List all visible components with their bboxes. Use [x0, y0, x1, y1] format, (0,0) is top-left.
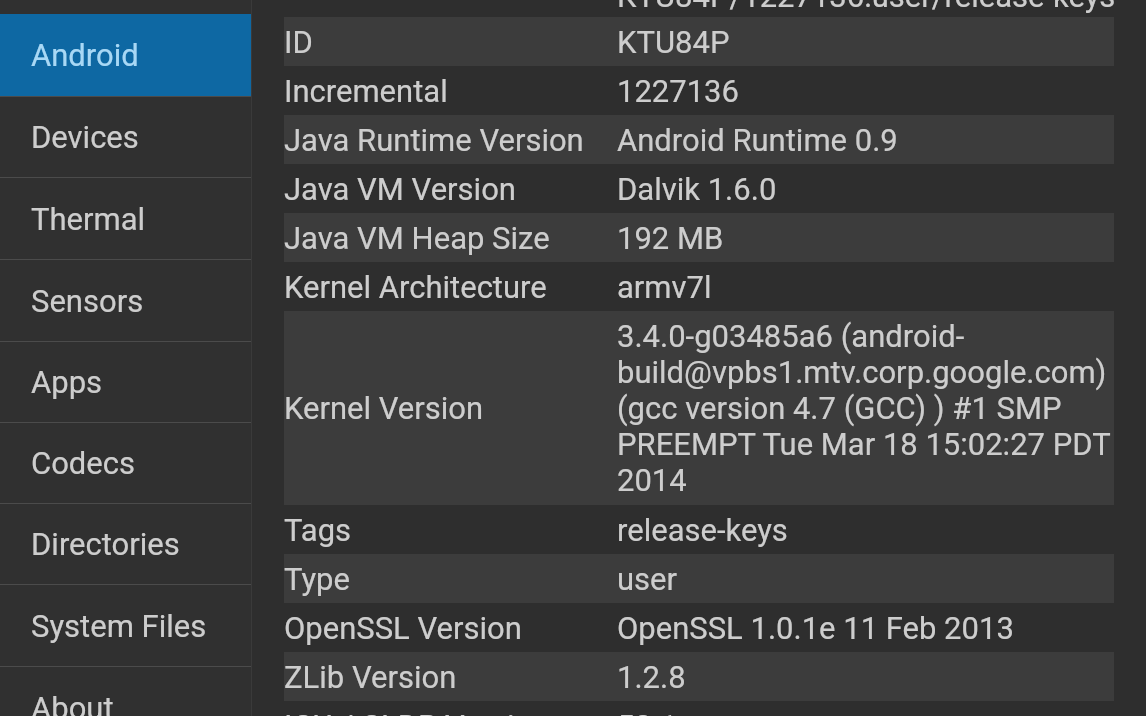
staticText: KTU84P/1227136:user/release-keys [617, 0, 1114, 14]
button[interactable]: Sensors [0, 260, 251, 341]
button[interactable]: Type [284, 554, 1114, 603]
staticText: Dalvik 1.6.0 [617, 171, 1114, 207]
staticText: Directories [31, 526, 180, 562]
staticText: 1227136 [617, 73, 1114, 109]
staticText: Java Runtime Version [284, 122, 617, 158]
button[interactable]: Android [0, 14, 251, 96]
button[interactable]: About [0, 667, 251, 716]
staticText: Type [284, 561, 617, 597]
button[interactable]: Java Runtime Version [284, 115, 1114, 164]
button[interactable]: Thermal [0, 178, 251, 259]
button[interactable]: ZLib Version [284, 652, 1114, 701]
button[interactable]: Directories [0, 504, 251, 584]
button[interactable]: Codecs [0, 423, 251, 503]
button[interactable]: Kernel Architecture [284, 262, 1114, 311]
button[interactable]: Java VM Version [284, 164, 1114, 213]
staticText: Incremental [284, 73, 617, 109]
staticText: ICU / CLDR Version [284, 708, 617, 716]
button[interactable]: KTU84P/1227136:user/release-keys [284, 0, 1114, 17]
staticText: Devices [31, 119, 139, 155]
staticText: 1.2.8 [617, 659, 1114, 695]
staticText: Android Runtime 0.9 [617, 122, 1114, 158]
button[interactable]: OpenSSL Version [284, 603, 1114, 652]
staticText: ZLib Version [284, 659, 617, 695]
staticText: ID [284, 24, 617, 60]
button[interactable]: ICU / CLDR Version [284, 701, 1114, 716]
staticText: user [617, 561, 1114, 597]
staticText: armv7l [617, 269, 1114, 305]
button[interactable]: Java VM Heap Size [284, 213, 1114, 262]
button[interactable]: Tags [284, 505, 1114, 554]
staticText: 53.1 [617, 708, 1114, 716]
button[interactable]: Devices [0, 97, 251, 177]
staticText: 192 MB [617, 220, 1114, 256]
staticText: Java VM Version [284, 171, 617, 207]
staticText: About [31, 690, 114, 716]
staticText: Thermal [31, 201, 146, 237]
staticText: Codecs [31, 445, 136, 481]
button[interactable]: Apps [0, 342, 251, 422]
button[interactable]: Kernel Version [284, 311, 1114, 505]
staticText: release-keys [617, 512, 1114, 548]
staticText: Apps [31, 364, 103, 400]
staticText: KTU84P [617, 24, 1114, 60]
staticText: OpenSSL Version [284, 610, 617, 646]
staticText: Tags [284, 512, 617, 548]
staticText: Sensors [31, 283, 144, 319]
staticText: OpenSSL 1.0.1e 11 Feb 2013 [617, 610, 1114, 646]
button[interactable]: System Files [0, 585, 251, 666]
staticText: 3.4.0-g03485a6 (android-build@vpbs1.mtv.… [617, 318, 1114, 498]
staticText: Java VM Heap Size [284, 220, 617, 256]
staticText: System Files [31, 608, 207, 644]
button[interactable]: Incremental [284, 66, 1114, 115]
staticText: Android [31, 37, 139, 73]
button[interactable]: ID [284, 17, 1114, 66]
staticText: Kernel Version [284, 390, 617, 426]
staticText: Kernel Architecture [284, 269, 617, 305]
